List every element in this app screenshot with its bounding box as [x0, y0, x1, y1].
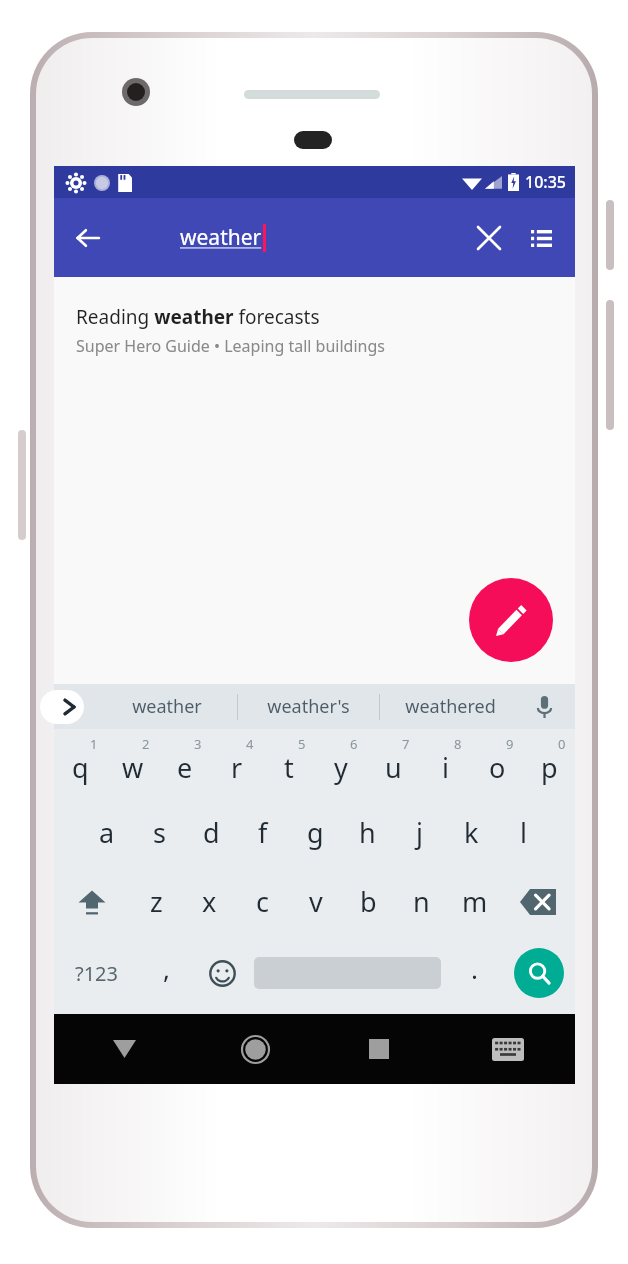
staticText: i [442, 749, 449, 786]
staticText: p [541, 749, 558, 786]
button[interactable]: u [367, 729, 419, 798]
button[interactable]: Home [194, 1014, 317, 1084]
staticText: r [231, 749, 243, 786]
button[interactable]: r [211, 729, 263, 798]
staticText: Reading weather forecasts [76, 304, 320, 330]
staticText: 8 [454, 735, 462, 753]
staticText: f [258, 814, 268, 851]
button[interactable]: z [129, 867, 183, 936]
button[interactable]: Back [60, 210, 116, 266]
staticText: a [99, 814, 115, 851]
staticText: t [284, 749, 294, 786]
staticText: weather [132, 694, 202, 719]
button[interactable]: , [138, 936, 194, 1010]
button[interactable]: q [54, 729, 107, 798]
button[interactable]: Clear query [463, 212, 515, 264]
button[interactable]: Backspace [501, 867, 575, 936]
button[interactable]: . [445, 936, 503, 1010]
button[interactable]: c [236, 867, 289, 936]
staticText: u [385, 749, 402, 786]
staticText: w [122, 749, 144, 786]
staticText: g [307, 814, 324, 851]
staticText: d [203, 814, 220, 851]
button[interactable]: x [183, 867, 236, 936]
button[interactable]: i [419, 729, 471, 798]
button[interactable]: t [263, 729, 315, 798]
button[interactable]: weathered [380, 684, 521, 729]
button[interactable]: n [395, 867, 448, 936]
button[interactable]: y [315, 729, 367, 798]
staticText: h [359, 814, 376, 851]
staticText: weathered [405, 694, 496, 719]
button[interactable]: d [185, 798, 237, 867]
button[interactable]: Shift [54, 867, 129, 936]
button[interactable]: p [523, 729, 575, 798]
button[interactable]: f [237, 798, 289, 867]
staticText: 2 [142, 735, 150, 753]
staticText: 5 [298, 735, 306, 753]
staticText: , [163, 951, 170, 986]
button[interactable]: m [448, 867, 501, 936]
staticText: 0 [558, 735, 566, 753]
button[interactable]: Menu [515, 212, 567, 264]
button[interactable]: Hide keyboard [440, 1014, 575, 1084]
staticText: z [150, 883, 163, 920]
staticText: . [471, 951, 478, 986]
button[interactable]: l [497, 798, 549, 867]
staticText: v [309, 883, 323, 920]
button[interactable]: e [159, 729, 211, 798]
button[interactable]: weather [180, 223, 440, 252]
staticText: 1 [90, 735, 98, 753]
staticText: x [202, 883, 217, 920]
staticText: n [413, 883, 430, 920]
button[interactable]: weather's [238, 684, 379, 729]
staticText: c [256, 883, 269, 920]
staticText: y [334, 749, 348, 786]
staticText: 10:35 [525, 171, 566, 193]
button[interactable]: Recents [317, 1014, 440, 1084]
button[interactable]: Reading weather forecasts [54, 277, 575, 357]
staticText: 9 [506, 735, 514, 753]
staticText: q [72, 749, 89, 786]
staticText: b [360, 883, 377, 920]
button[interactable]: Voice input [521, 684, 567, 729]
button[interactable]: b [342, 867, 395, 936]
staticText: 3 [194, 735, 202, 753]
staticText: l [520, 814, 527, 851]
button[interactable]: j [393, 798, 445, 867]
button[interactable]: More suggestions [40, 690, 84, 724]
staticText: Super Hero Guide • Leaping tall building… [76, 335, 385, 357]
button[interactable]: Search [514, 948, 564, 998]
button[interactable]: Emoji [194, 936, 250, 1010]
button[interactable]: v [289, 867, 342, 936]
staticText: m [462, 883, 488, 920]
button[interactable]: o [471, 729, 523, 798]
staticText: e [177, 749, 193, 786]
button[interactable]: a [80, 798, 133, 867]
staticText: o [489, 749, 506, 786]
button[interactable]: Compose [469, 578, 553, 662]
staticText: weather [180, 223, 262, 252]
button[interactable]: weather [96, 684, 237, 729]
staticText: k [464, 814, 479, 851]
staticText: 7 [402, 735, 410, 753]
button[interactable]: h [341, 798, 393, 867]
staticText: ?123 [75, 960, 118, 987]
staticText: 6 [350, 735, 358, 753]
staticText: j [416, 814, 423, 851]
button[interactable]: w [107, 729, 159, 798]
button[interactable]: Back [54, 1014, 194, 1084]
staticText: weather's [267, 694, 350, 719]
staticText: s [153, 814, 166, 851]
button[interactable]: ?123 [54, 936, 138, 1010]
button[interactable]: g [289, 798, 341, 867]
staticText: 4 [246, 735, 254, 753]
button[interactable]: s [133, 798, 185, 867]
button[interactable]: k [445, 798, 497, 867]
